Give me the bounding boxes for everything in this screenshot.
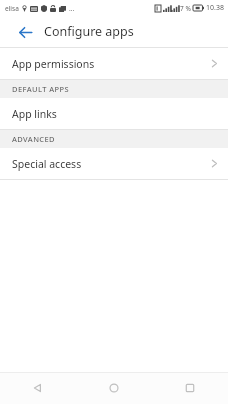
button[interactable]: App links <box>0 98 228 129</box>
staticText: App permissions <box>12 57 95 71</box>
staticText: Configure apps <box>44 23 134 40</box>
button[interactable]: Home <box>76 372 152 404</box>
staticText: elisa <box>5 4 19 13</box>
staticText: 7 % <box>180 4 191 13</box>
button[interactable]: Back <box>0 372 76 404</box>
staticText: 10.38 <box>206 3 224 13</box>
staticText: DEFAULT APPS <box>12 84 69 94</box>
staticText: ... <box>69 4 75 13</box>
button[interactable]: Back <box>11 18 39 46</box>
staticText: App links <box>12 107 57 121</box>
staticText: ADVANCED <box>12 134 55 144</box>
staticText: Special access <box>12 157 82 171</box>
button[interactable]: Special access <box>0 148 228 179</box>
button[interactable]: Recent apps <box>152 372 228 404</box>
button[interactable]: App permissions <box>0 48 228 79</box>
